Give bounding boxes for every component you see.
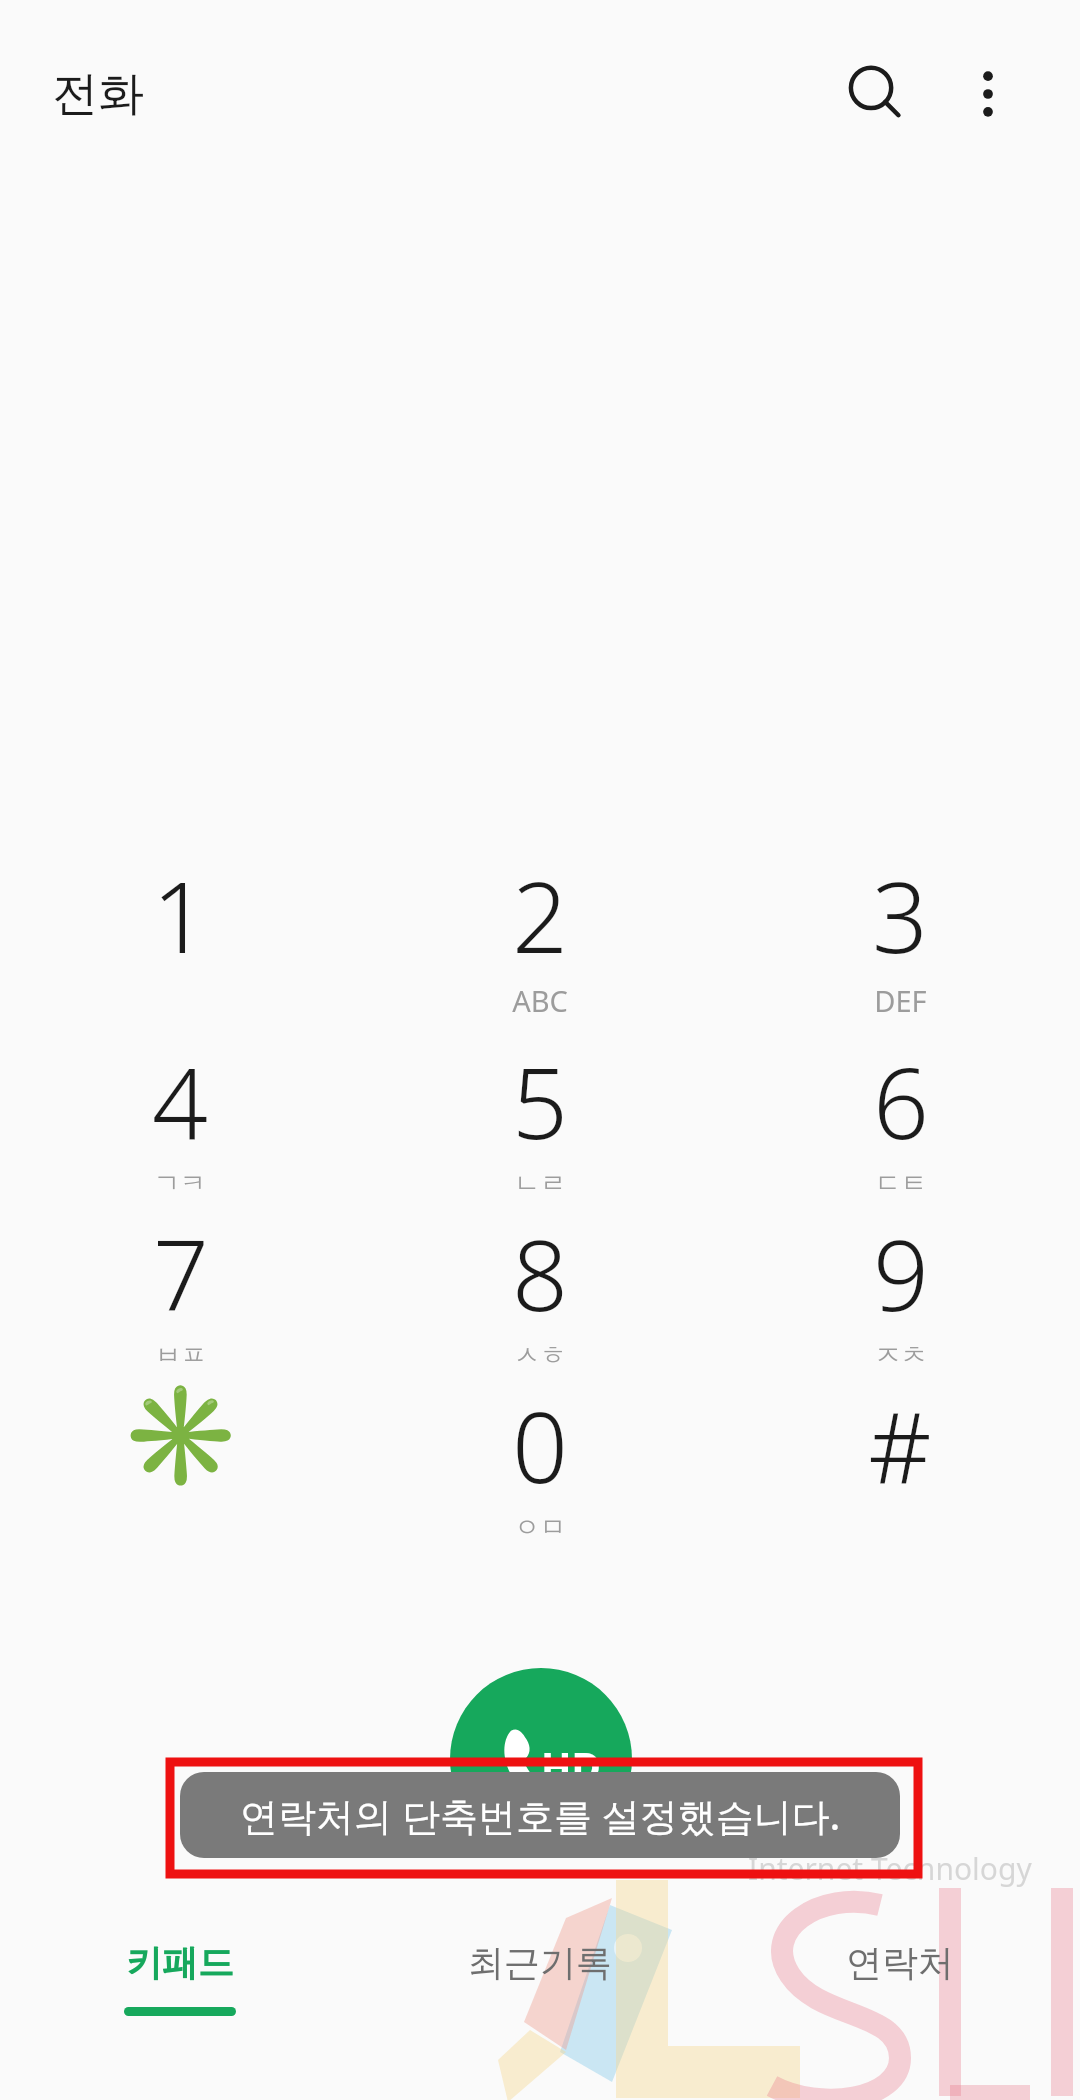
button[interactable]: 연락처: [720, 1940, 1080, 2016]
staticText: Internet Technology: [748, 1848, 1032, 1889]
staticText: ㅅㅎ: [514, 1339, 566, 1372]
staticText: ㄴㄹ: [514, 1167, 566, 1200]
button[interactable]: ✳: [0, 1378, 360, 1548]
button[interactable]: Call: [450, 1668, 632, 1850]
staticText: 2: [512, 848, 568, 981]
staticText: 9: [873, 1206, 929, 1339]
staticText: 7: [153, 1206, 209, 1339]
button[interactable]: 최근기록: [360, 1940, 720, 2016]
staticText: 8: [512, 1206, 568, 1339]
staticText: 5: [512, 1034, 568, 1167]
staticText: ✳: [119, 1378, 242, 1493]
button[interactable]: 6: [720, 1034, 1080, 1204]
button[interactable]: 0: [360, 1378, 720, 1548]
button[interactable]: 키패드: [0, 1940, 360, 2016]
staticText: 0: [512, 1378, 568, 1511]
staticText: 6: [873, 1034, 929, 1167]
staticText: HD: [541, 1738, 601, 1792]
staticText: 전화: [52, 65, 144, 123]
button[interactable]: 7: [0, 1206, 360, 1376]
button[interactable]: 9: [720, 1206, 1080, 1376]
staticText: ㅇㅁ: [514, 1511, 566, 1544]
button[interactable]: #: [720, 1378, 1080, 1548]
staticText: 3: [872, 848, 928, 981]
staticText: ABC: [512, 981, 568, 1018]
staticText: 연락처: [846, 1940, 954, 1985]
button[interactable]: 1: [0, 848, 360, 1018]
button[interactable]: 4: [0, 1034, 360, 1204]
staticText: DEF: [874, 981, 927, 1018]
staticText: 연락처의 단축번호를 설정했습니다.: [240, 1789, 841, 1841]
button[interactable]: 8: [360, 1206, 720, 1376]
button[interactable]: 5: [360, 1034, 720, 1204]
button[interactable]: More options: [940, 46, 1036, 142]
staticText: 최근기록: [468, 1940, 612, 1985]
button[interactable]: Search: [824, 42, 928, 146]
staticText: #: [868, 1378, 932, 1511]
staticText: 1: [152, 848, 208, 981]
staticText: ㅂㅍ: [155, 1339, 207, 1372]
staticText: 키패드: [126, 1940, 234, 1985]
staticText: ㄱㅋ: [154, 1167, 206, 1200]
staticText: ㅈㅊ: [875, 1339, 927, 1372]
staticText: 4: [152, 1034, 208, 1167]
button[interactable]: 3: [720, 848, 1080, 1018]
staticText: ㄷㅌ: [875, 1167, 927, 1200]
button[interactable]: 2: [360, 848, 720, 1018]
